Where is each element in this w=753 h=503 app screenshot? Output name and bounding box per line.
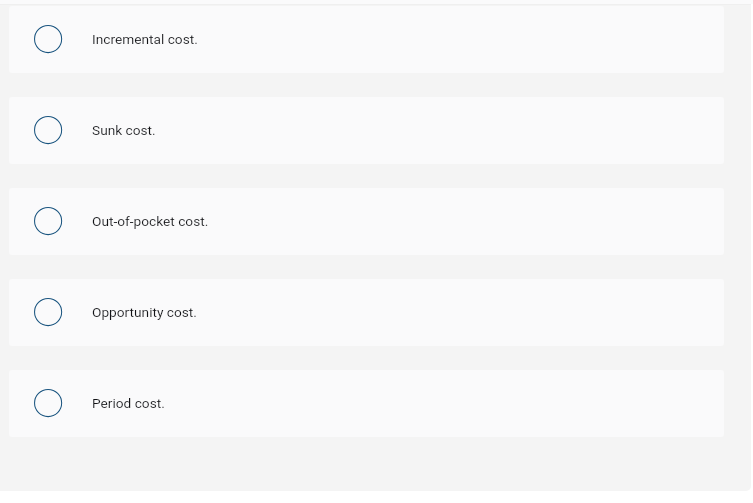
button[interactable]: Select Out-of-pocket cost. bbox=[9, 188, 724, 255]
button[interactable]: Select Sunk cost. bbox=[9, 97, 724, 164]
other: Select Out-of-pocket cost. bbox=[33, 207, 63, 237]
staticText: Sunk cost. bbox=[92, 122, 156, 138]
staticText: Out-of-pocket cost. bbox=[92, 213, 209, 229]
staticText: Opportunity cost. bbox=[92, 304, 197, 320]
other: Select Sunk cost. bbox=[33, 116, 63, 146]
other: Select Period cost. bbox=[33, 389, 63, 419]
other: Select Opportunity cost. bbox=[33, 298, 63, 328]
button[interactable]: Select Incremental cost. bbox=[9, 6, 724, 73]
staticText: Incremental cost. bbox=[92, 31, 198, 47]
button[interactable]: Select Period cost. bbox=[9, 370, 724, 437]
other: Select Incremental cost. bbox=[33, 25, 63, 55]
button[interactable]: Select Opportunity cost. bbox=[9, 279, 724, 346]
staticText: Period cost. bbox=[92, 395, 165, 411]
